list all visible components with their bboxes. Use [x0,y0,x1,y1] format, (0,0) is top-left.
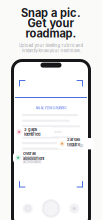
button[interactable]: 3 gaps identified [14,127,54,137]
staticText: ANALYZING RUBRIC [35,106,66,110]
staticText: Upload your leveling rubric and [18,43,83,48]
staticText: Get your [27,16,74,30]
button[interactable]: Overall assessment [13,152,61,163]
staticText: roadmap. [25,27,76,40]
staticText: instantly know your next move. [21,48,80,53]
staticText: Snap a pic. [21,6,81,20]
staticText: Overall assessment [23,151,44,161]
button[interactable]: Capture photo [41,199,60,218]
button[interactable]: Switch camera [69,203,79,213]
staticText: Promotion achievable [23,155,41,164]
button[interactable]: Photo library [23,203,33,213]
staticText: follow-up [67,143,83,148]
staticText: 2 areas require [67,137,80,147]
staticText: 3 gaps identified [24,127,40,137]
button[interactable]: 2 areas require [57,138,94,149]
